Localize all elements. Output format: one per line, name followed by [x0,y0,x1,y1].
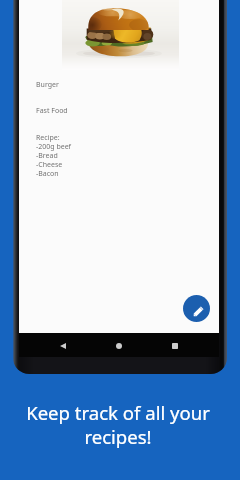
button[interactable]: Home [108,337,130,355]
button[interactable]: Edit recipe [183,295,210,322]
staticText: Recipe: -200g beef -Bread -Cheese -Bacon [36,133,71,178]
button[interactable]: Back [52,337,74,355]
staticText: Fast Food [36,106,68,116]
staticText: Burger [36,80,59,90]
button[interactable]: Recents [164,337,186,355]
staticText: Keep track of all your recipes! [0,400,238,450]
